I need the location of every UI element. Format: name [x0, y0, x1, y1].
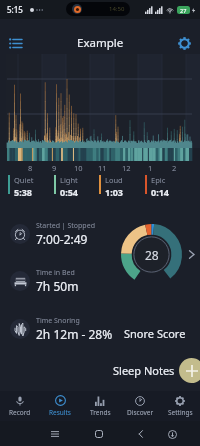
staticText: Settings	[168, 408, 193, 417]
staticText: 10	[74, 163, 83, 173]
staticText: 5:15	[7, 4, 23, 15]
staticText: 28	[145, 247, 159, 263]
staticText: Sleep Notes	[113, 363, 175, 378]
button[interactable]: Recents	[47, 426, 63, 442]
staticText: Snore Score	[124, 326, 186, 341]
staticText: 0:14	[151, 186, 169, 198]
staticText: Results	[49, 408, 71, 417]
staticText: Quiet	[14, 175, 34, 185]
staticText: Discover	[127, 408, 154, 417]
button[interactable]: Time Snoring	[0, 316, 118, 341]
button[interactable]: Download	[164, 426, 180, 442]
button[interactable]: Loud	[99, 175, 123, 198]
staticText: 1:03	[105, 186, 123, 198]
staticText: 7h 50m	[36, 278, 79, 293]
staticText: Loud	[105, 175, 123, 185]
button[interactable]: Back	[133, 426, 149, 442]
staticText: 5:38	[14, 186, 32, 198]
button[interactable]: Time in Bed	[0, 268, 118, 293]
button[interactable]: Menu	[2, 30, 28, 56]
staticText: Epic	[151, 175, 166, 185]
staticText: Light	[60, 175, 78, 185]
staticText: Example	[77, 35, 124, 51]
staticText: 9	[52, 163, 57, 173]
button[interactable]: Open details	[183, 246, 200, 263]
button[interactable]: Settings	[160, 391, 200, 421]
staticText: 7:00-2:49	[36, 231, 88, 246]
button[interactable]: Light	[54, 175, 78, 198]
button[interactable]: Snore score details	[121, 224, 182, 285]
button[interactable]: Sleep Notes	[113, 358, 200, 383]
staticText: 0:54	[60, 186, 78, 198]
staticText: Record	[9, 408, 31, 417]
staticText: Started | Stopped	[36, 221, 95, 231]
button[interactable]: Record	[0, 391, 40, 421]
button[interactable]: Settings	[171, 30, 197, 56]
staticText: 2	[172, 163, 177, 173]
staticText: 1	[148, 163, 153, 173]
button[interactable]: Home	[91, 426, 107, 442]
button[interactable]: Discover	[120, 391, 160, 421]
button[interactable]: Trends	[80, 391, 120, 421]
button[interactable]: Results	[40, 391, 80, 421]
other: Add sleep note	[179, 358, 200, 383]
staticText: 14:50	[109, 5, 125, 13]
button[interactable]: Quiet	[8, 175, 34, 198]
staticText: 2h 12m - 28%	[36, 326, 113, 341]
staticText: 8	[28, 163, 33, 173]
button[interactable]: Started | Stopped	[0, 221, 118, 246]
staticText: 11	[98, 163, 107, 173]
staticText: Time Snoring	[36, 316, 80, 326]
staticText: 12	[122, 163, 131, 173]
button[interactable]: Epic	[145, 175, 169, 198]
staticText: Trends	[90, 408, 111, 417]
button[interactable]: Snore Score	[124, 326, 186, 341]
staticText: 27	[180, 7, 187, 14]
staticText: Time in Bed	[36, 268, 75, 278]
